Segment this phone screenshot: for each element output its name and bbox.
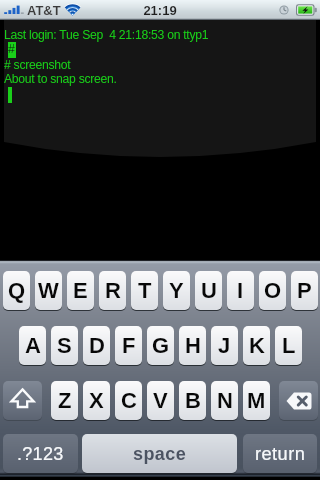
button[interactable]: S [51, 326, 78, 365]
staticText: Q [8, 278, 26, 303]
button[interactable]: X [83, 381, 110, 420]
staticText: S [57, 333, 72, 358]
button[interactable]: R [99, 271, 126, 310]
button[interactable]: D [83, 326, 110, 365]
staticText: Last login: Tue Sep 4 21:18:53 on ttyp1 [4, 28, 209, 42]
staticText: D [89, 333, 105, 358]
staticText: About to snap screen. [4, 72, 117, 86]
button[interactable]: .?123 [3, 434, 78, 473]
staticText: U [201, 278, 217, 303]
staticText: J [218, 333, 231, 358]
staticText: O [264, 278, 282, 303]
staticText: 21:19 [0, 3, 320, 18]
staticText: I [237, 278, 244, 303]
staticText: .?123 [17, 444, 64, 464]
staticText: A [25, 333, 41, 358]
button[interactable]: Backspace [279, 381, 318, 420]
staticText: G [152, 333, 170, 358]
button[interactable]: N [211, 381, 238, 420]
button[interactable]: E [67, 271, 94, 310]
button[interactable]: Q [3, 271, 30, 310]
staticText: X [89, 388, 104, 413]
staticText: N [217, 388, 233, 413]
button[interactable]: V [147, 381, 174, 420]
button[interactable]: space [82, 434, 237, 473]
staticText: F [122, 333, 136, 358]
button[interactable]: A [19, 326, 46, 365]
staticText: H [185, 333, 201, 358]
staticText: K [249, 333, 265, 358]
staticText: Z [58, 388, 72, 413]
button[interactable]: M [243, 381, 270, 420]
button[interactable]: return [243, 434, 317, 473]
staticText: T [138, 278, 152, 303]
button[interactable]: B [179, 381, 206, 420]
button[interactable]: F [115, 326, 142, 365]
button[interactable]: H [179, 326, 206, 365]
staticText: AT&T [27, 3, 61, 18]
button[interactable]: U [195, 271, 222, 310]
staticText: # screenshot [4, 58, 71, 72]
button[interactable]: I [227, 271, 254, 310]
staticText: C [121, 388, 137, 413]
staticText: L [282, 333, 296, 358]
button[interactable]: C [115, 381, 142, 420]
staticText: R [105, 278, 121, 303]
staticText: return [255, 444, 306, 464]
staticText: E [73, 278, 88, 303]
button[interactable]: K [243, 326, 270, 365]
staticText: Y [169, 278, 184, 303]
staticText: V [153, 388, 168, 413]
staticText: P [297, 278, 312, 303]
button[interactable]: Y [163, 271, 190, 310]
staticText: M [247, 388, 266, 413]
button[interactable]: W [35, 271, 62, 310]
button[interactable]: P [291, 271, 318, 310]
button[interactable]: T [131, 271, 158, 310]
staticText: space [133, 444, 187, 464]
button[interactable]: J [211, 326, 238, 365]
button[interactable]: Shift [3, 381, 42, 420]
button[interactable]: O [259, 271, 286, 310]
staticText: # [8, 42, 15, 56]
button[interactable]: G [147, 326, 174, 365]
button[interactable]: Z [51, 381, 78, 420]
staticText: B [185, 388, 201, 413]
staticText: W [38, 278, 59, 303]
button[interactable]: L [275, 326, 302, 365]
